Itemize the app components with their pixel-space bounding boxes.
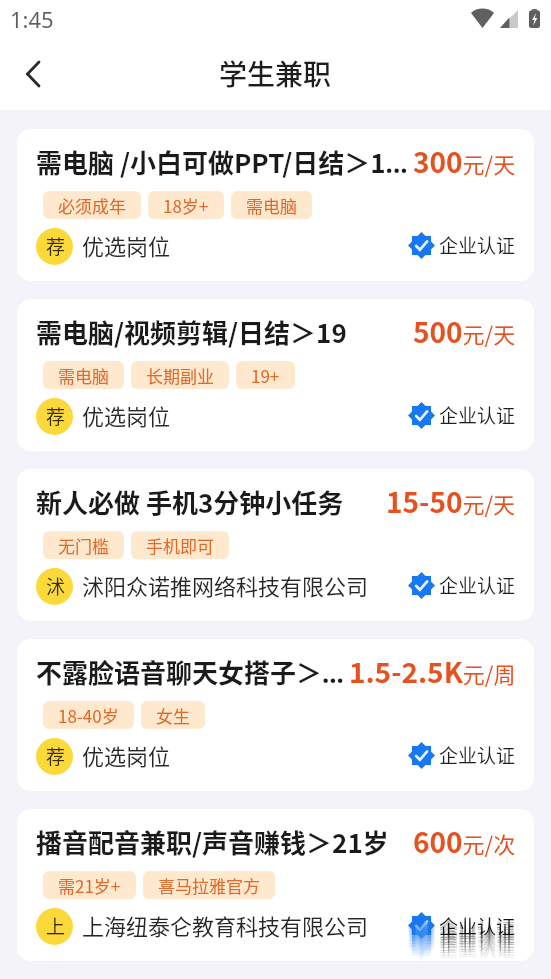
button[interactable]: 300元/天 (17, 129, 534, 281)
staticText: 新人必做 手机3分钟小任务 (36, 483, 344, 521)
staticText: 不露脸语音聊天女搭子＞... (36, 653, 344, 691)
staticText: 企业认证 (439, 928, 516, 954)
staticText: 企业认证 (439, 401, 516, 429)
staticText: 荐 (46, 742, 66, 770)
staticText: 企业认证 (439, 571, 516, 599)
staticText: 企业认证 (439, 741, 516, 769)
staticText: 500元/天 (413, 311, 516, 352)
staticText: 企业认证 (439, 915, 516, 941)
staticText: 需21岁+ (58, 873, 121, 898)
staticText: 15-50元/天 (386, 481, 516, 522)
staticText: 企业认证 (439, 922, 516, 948)
button[interactable]: Back (8, 50, 56, 98)
staticText: 企业认证 (439, 933, 516, 959)
staticText: 18-40岁 (58, 703, 119, 728)
staticText: 无门槛 (58, 533, 109, 558)
staticText: 需电脑/视频剪辑/日结＞19 (36, 313, 347, 351)
staticText: 企业认证 (439, 930, 516, 956)
button[interactable]: 1.5-2.5K元/周 (17, 639, 534, 791)
staticText: 优选岗位 (82, 739, 171, 771)
staticText: 18岁+ (163, 193, 209, 218)
button[interactable]: 15-50元/天 (17, 469, 534, 621)
staticText: 手机即可 (146, 533, 214, 558)
staticText: 上 (46, 912, 66, 940)
staticText: 必须成年 (58, 193, 126, 218)
button[interactable]: 600元/次 (17, 809, 534, 961)
staticText: 荐 (46, 402, 66, 430)
staticText: 需电脑 /小白可做PPT/日结＞1... (36, 143, 408, 181)
staticText: 企业认证 (439, 917, 516, 943)
staticText: 优选岗位 (82, 229, 171, 261)
staticText: 女生 (156, 703, 190, 728)
staticText: 学生兼职 (219, 53, 332, 94)
staticText: 1:45 (10, 4, 54, 34)
staticText: 需电脑 (246, 193, 297, 218)
staticText: 企业认证 (439, 925, 516, 951)
staticText: 沭阳众诺推网络科技有限公司 (82, 569, 369, 601)
staticText: 上海纽泰仑教育科技有限公司 (82, 909, 369, 941)
staticText: 企业认证 (439, 935, 516, 961)
button[interactable]: 500元/天 (17, 299, 534, 451)
staticText: 荐 (46, 232, 66, 260)
staticText: 沭 (46, 572, 66, 600)
staticText: 优选岗位 (82, 399, 171, 431)
staticText: 需电脑 (58, 363, 109, 388)
staticText: 长期副业 (146, 363, 214, 388)
staticText: 企业认证 (439, 920, 516, 946)
staticText: 企业认证 (439, 231, 516, 259)
staticText: 19+ (251, 363, 280, 388)
staticText: 喜马拉雅官方 (158, 873, 260, 898)
staticText: 600元/次 (413, 821, 516, 862)
staticText: 300元/天 (413, 141, 516, 182)
staticText: 播音配音兼职/声音赚钱＞21岁 (36, 823, 389, 861)
staticText: 1.5-2.5K元/周 (349, 651, 516, 692)
staticText: 企业认证 (439, 912, 516, 938)
